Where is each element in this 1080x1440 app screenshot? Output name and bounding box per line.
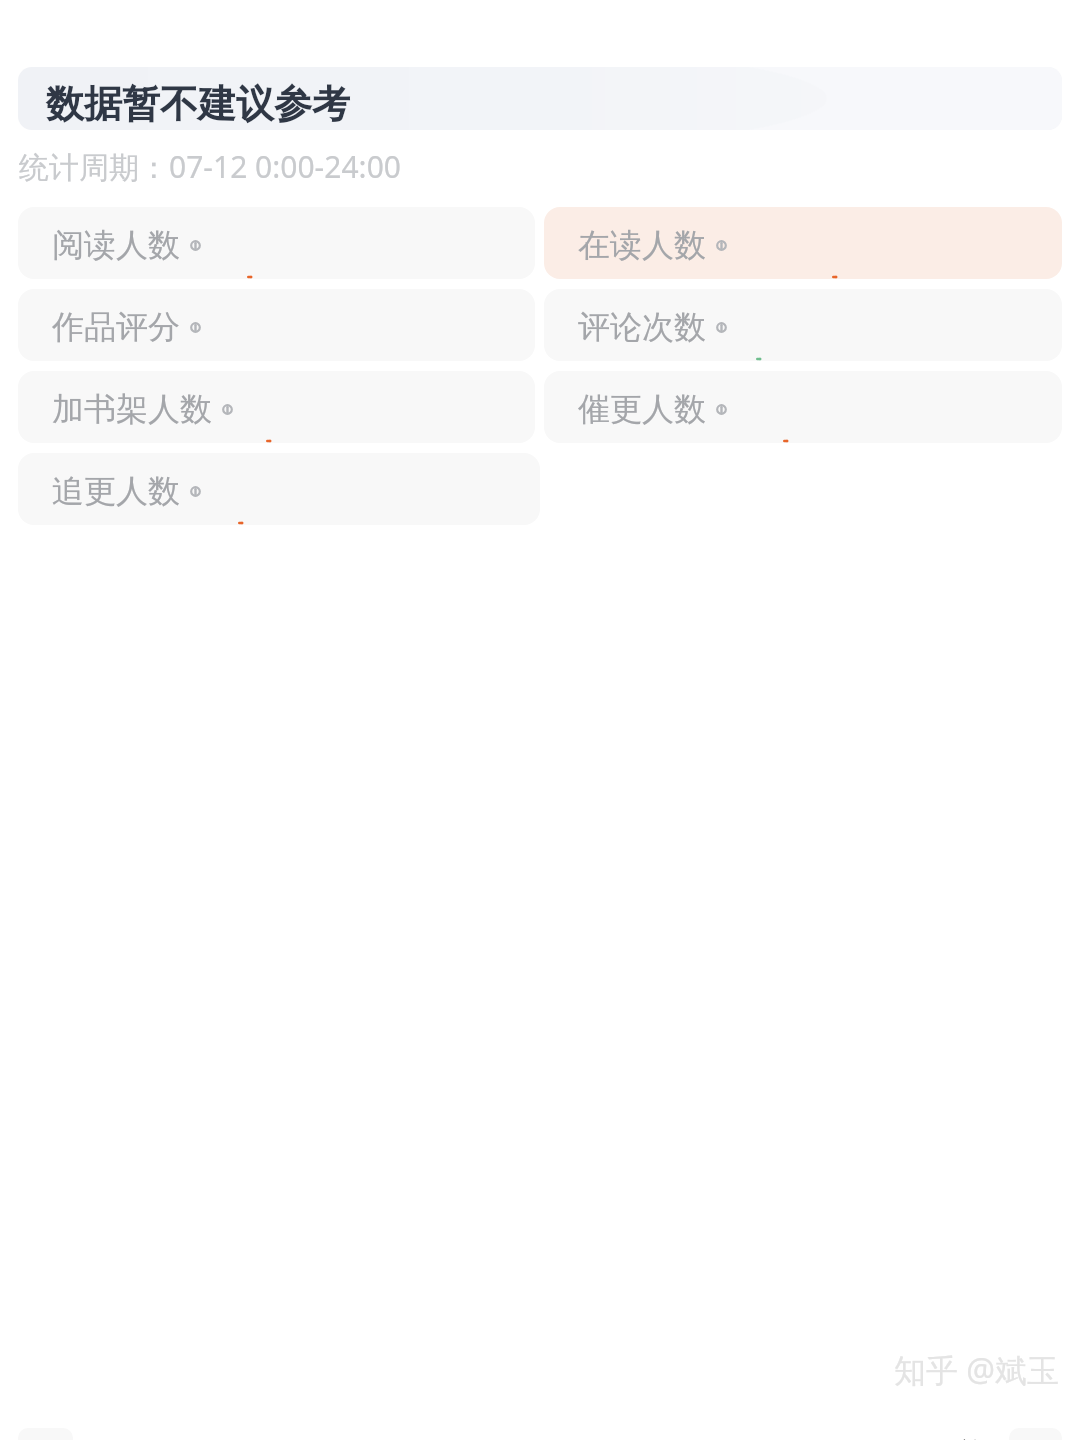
staticText: 知乎 @斌玉 bbox=[894, 1348, 1060, 1392]
other: 说明 bbox=[222, 404, 233, 415]
other: 说明 bbox=[716, 240, 727, 251]
button[interactable]: 评论次数 bbox=[544, 289, 1062, 361]
staticText: 加书架人数 bbox=[52, 389, 212, 429]
staticText: 作品评分 bbox=[52, 307, 180, 347]
button[interactable]: 作品评分 bbox=[18, 289, 535, 361]
other: 说明 bbox=[190, 240, 201, 251]
button[interactable]: 在读人数 bbox=[544, 207, 1062, 279]
button[interactable]: 单日 bbox=[956, 1428, 1009, 1440]
button[interactable]: 数据暂不建议参考 bbox=[18, 67, 1062, 130]
button[interactable]: 追更人数 bbox=[18, 453, 540, 525]
staticText: 数据暂不建议参考 bbox=[46, 80, 350, 128]
other: 说明 bbox=[190, 486, 201, 497]
other: 说明 bbox=[190, 322, 201, 333]
button[interactable]: 催更人数 bbox=[544, 371, 1062, 443]
staticText: 在读人数 bbox=[578, 225, 706, 265]
staticText: 催更人数 bbox=[578, 389, 706, 429]
staticText: 统计周期：07-12 0:00-24:00 bbox=[19, 146, 401, 187]
other: 说明 bbox=[716, 404, 727, 415]
other: 说明 bbox=[716, 322, 727, 333]
button[interactable]: 加书架人数 bbox=[18, 371, 535, 443]
staticText: 阅读人数 bbox=[52, 225, 180, 265]
button[interactable]: 阅读人数 bbox=[18, 207, 535, 279]
staticText: 单日 bbox=[956, 1435, 1009, 1440]
staticText: 追更人数 bbox=[52, 471, 180, 511]
staticText: 评论次数 bbox=[578, 307, 706, 347]
